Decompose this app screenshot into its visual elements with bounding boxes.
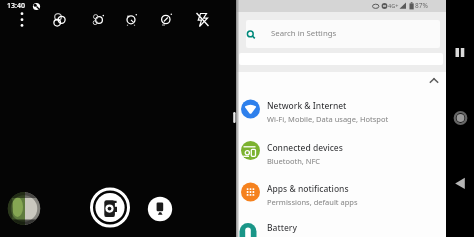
button[interactable] bbox=[170, 10, 200, 30]
button[interactable]: Search in Settings bbox=[246, 20, 440, 48]
staticText: Apps & notifications bbox=[267, 183, 349, 195]
button[interactable]: Network & Internet bbox=[236, 88, 446, 130]
staticText: Search in Settings bbox=[271, 28, 337, 39]
button[interactable] bbox=[14, 10, 30, 26]
button[interactable] bbox=[147, 196, 173, 222]
button[interactable] bbox=[80, 10, 110, 30]
staticText: 13:40 bbox=[7, 1, 25, 11]
button[interactable] bbox=[110, 10, 140, 30]
staticText: Battery bbox=[267, 222, 297, 234]
staticText: Network & Internet bbox=[267, 100, 347, 112]
staticText: Bluetooth, NFC bbox=[267, 156, 321, 166]
staticText: 4G+ bbox=[388, 2, 399, 9]
staticText: Permissions, default apps bbox=[267, 197, 358, 207]
button[interactable] bbox=[89, 187, 131, 229]
button[interactable] bbox=[450, 42, 471, 63]
button[interactable]: Connected devices bbox=[236, 130, 446, 172]
button[interactable] bbox=[140, 10, 170, 30]
staticText: Connected devices bbox=[267, 142, 343, 154]
button[interactable]: Apps & notifications bbox=[236, 171, 446, 213]
staticText: 87% bbox=[415, 1, 428, 10]
button[interactable] bbox=[8, 192, 41, 225]
button[interactable] bbox=[50, 10, 80, 30]
staticText: Wi-Fi, Mobile, Data usage, Hotspot bbox=[267, 114, 389, 124]
button[interactable] bbox=[450, 173, 471, 194]
button[interactable]: Battery bbox=[236, 213, 446, 237]
button[interactable] bbox=[450, 108, 471, 129]
